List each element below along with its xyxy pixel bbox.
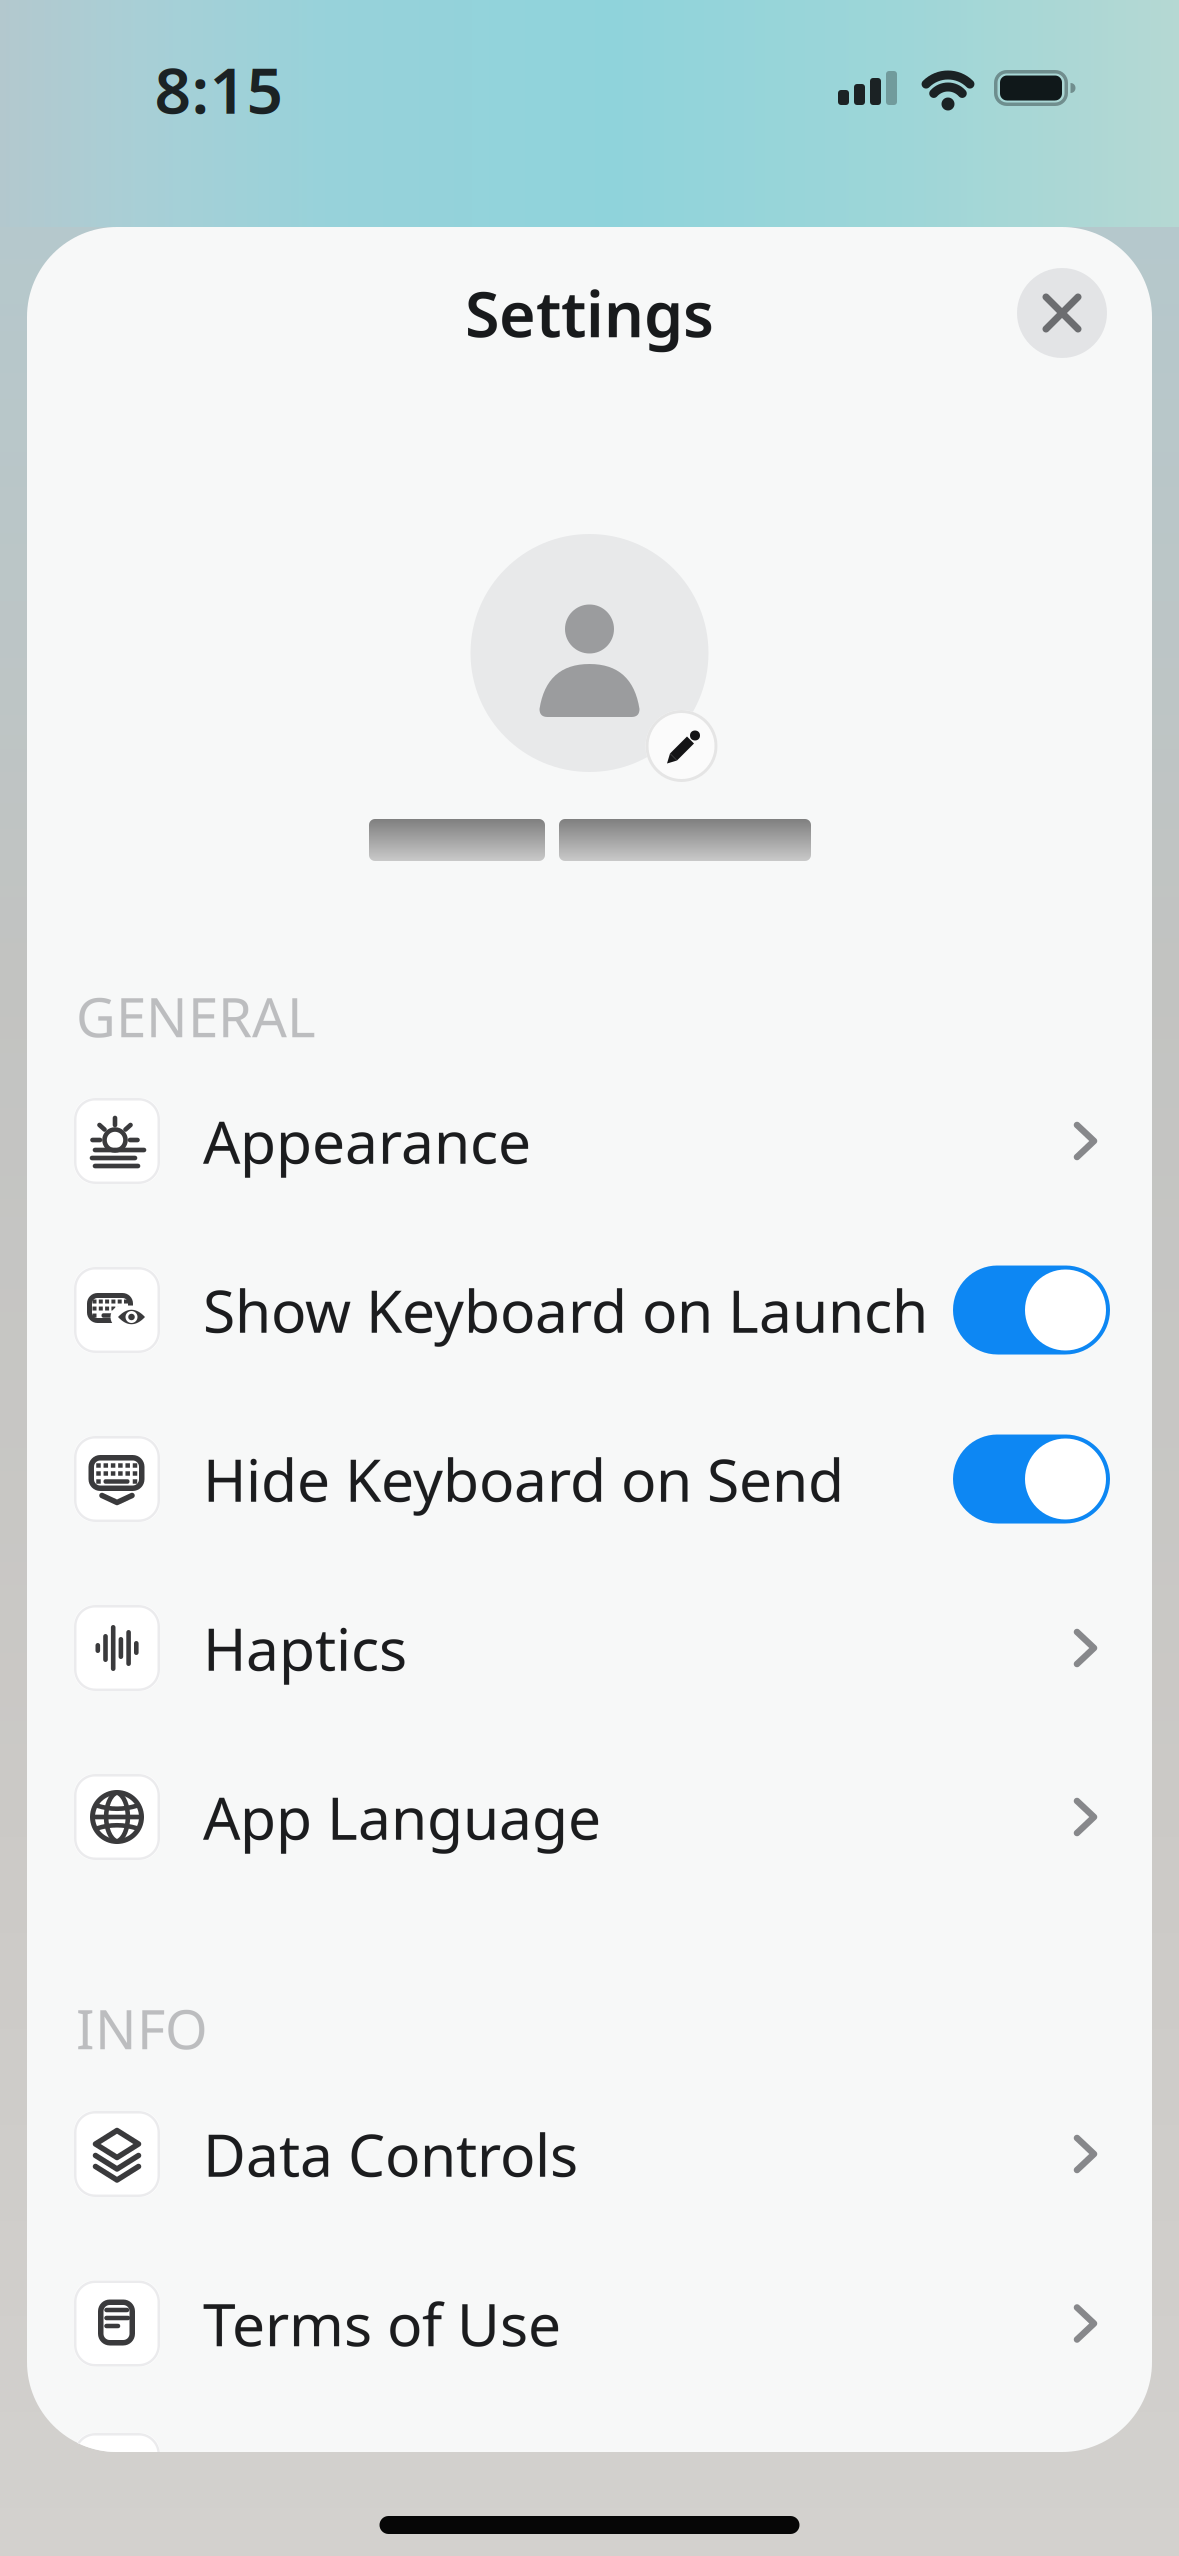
button[interactable]: App Language bbox=[27, 1732, 1152, 1901]
button[interactable]: Profile photo bbox=[470, 534, 708, 772]
staticText: Show Keyboard on Launch bbox=[203, 1271, 928, 1349]
staticText: Haptics bbox=[203, 1609, 407, 1687]
button[interactable]: Close bbox=[1017, 268, 1107, 358]
staticText: Terms of Use bbox=[203, 2284, 561, 2362]
button[interactable]: Data Controls bbox=[27, 2069, 1152, 2238]
staticText: Data Controls bbox=[203, 2115, 578, 2193]
staticText: INFO bbox=[76, 1992, 208, 2064]
button[interactable]: Hide Keyboard on Send bbox=[27, 1394, 1152, 1563]
button[interactable]: Edit profile photo bbox=[645, 710, 717, 782]
button[interactable]: Haptics bbox=[27, 1563, 1152, 1732]
staticText: Hide Keyboard on Send bbox=[203, 1440, 844, 1518]
staticText: GENERAL bbox=[76, 980, 316, 1052]
staticText: 8:15 bbox=[154, 46, 283, 131]
button[interactable]: Appearance bbox=[27, 1056, 1152, 1225]
button[interactable]: Terms of Use bbox=[27, 2239, 1152, 2408]
staticText: App Language bbox=[203, 1778, 601, 1856]
staticText: Settings bbox=[465, 271, 714, 355]
button[interactable]: Show Keyboard on Launch bbox=[27, 1225, 1152, 1394]
staticText: Appearance bbox=[203, 1102, 531, 1180]
